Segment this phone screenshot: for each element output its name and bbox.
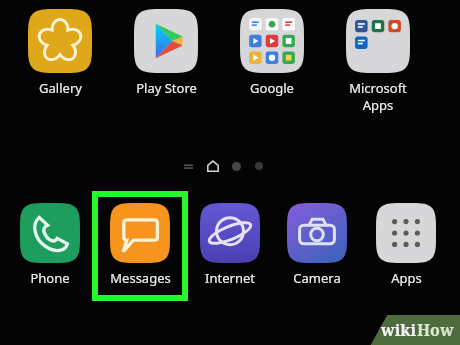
button[interactable]: Gallery (7, 9, 113, 97)
staticText: Play Store (136, 79, 197, 97)
staticText: Google (250, 79, 294, 97)
staticText: Phone (30, 269, 70, 287)
staticText: wiki (381, 319, 417, 341)
button[interactable] (232, 162, 241, 171)
staticText: Camera (293, 269, 341, 287)
button[interactable]: App list page (182, 160, 195, 173)
button[interactable] (255, 162, 263, 170)
button[interactable]: Microsoft Apps (325, 9, 431, 114)
staticText: Gallery (39, 79, 82, 97)
staticText: Messages (110, 269, 171, 287)
button[interactable]: Camera (272, 203, 362, 287)
staticText: How (417, 319, 454, 341)
button[interactable]: Phone (8, 203, 92, 287)
button[interactable]: Home page (206, 159, 220, 173)
staticText: Apps (391, 269, 422, 287)
button[interactable]: Messages (92, 203, 188, 287)
button[interactable]: Play Store (113, 9, 219, 97)
button[interactable]: Google (219, 9, 325, 97)
staticText: Microsoft Apps (349, 79, 407, 114)
staticText: Internet (205, 269, 255, 287)
button[interactable]: Apps (362, 203, 450, 287)
button[interactable]: Internet (188, 203, 272, 287)
